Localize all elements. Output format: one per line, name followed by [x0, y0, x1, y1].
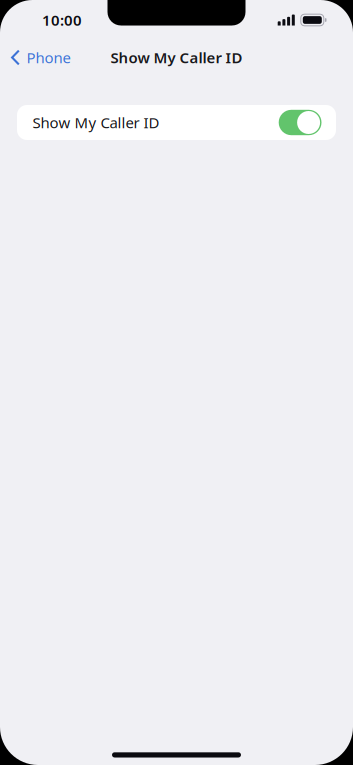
staticText: Show My Caller ID — [110, 47, 242, 68]
button[interactable]: Show My Caller ID — [17, 105, 336, 140]
staticText: Phone — [26, 47, 70, 68]
button[interactable]: Phone — [0, 40, 79, 75]
staticText: Show My Caller ID — [32, 112, 159, 133]
staticText: 10:00 — [42, 10, 82, 30]
